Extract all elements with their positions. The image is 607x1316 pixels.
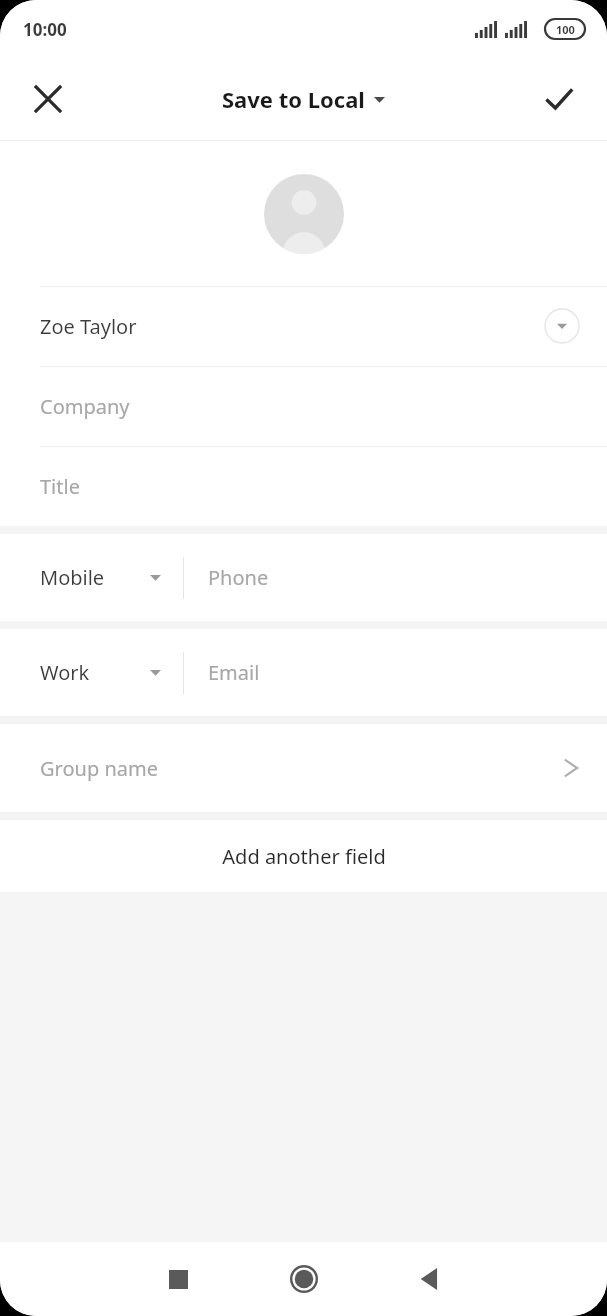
button[interactable]: Contact photo bbox=[264, 174, 344, 254]
staticText: Title bbox=[40, 473, 80, 500]
button[interactable]: Back bbox=[392, 1242, 468, 1316]
button[interactable]: Company bbox=[0, 366, 607, 446]
button[interactable]: Group name bbox=[0, 724, 607, 812]
staticText: Email bbox=[208, 659, 260, 686]
staticText: Save to Local bbox=[222, 84, 365, 114]
staticText: Group name bbox=[40, 755, 158, 782]
staticText: Zoe Taylor bbox=[40, 313, 137, 340]
staticText: Phone bbox=[208, 564, 269, 591]
staticText: Company bbox=[40, 393, 130, 420]
button[interactable]: Expand name bbox=[544, 308, 580, 344]
button[interactable]: Save bbox=[521, 61, 597, 137]
staticText: 100 bbox=[556, 22, 575, 37]
button[interactable]: Home bbox=[266, 1242, 342, 1316]
button[interactable]: Mobile bbox=[0, 534, 607, 621]
button[interactable]: Title bbox=[0, 446, 607, 526]
button[interactable]: Add another field bbox=[0, 820, 607, 892]
button[interactable]: Recent apps bbox=[140, 1242, 216, 1316]
button[interactable]: Work bbox=[0, 629, 607, 716]
button[interactable]: Close bbox=[10, 61, 86, 137]
button[interactable]: Save to Local bbox=[222, 84, 385, 114]
staticText: 10:00 bbox=[23, 18, 67, 41]
staticText: Work bbox=[40, 659, 90, 686]
button[interactable]: Zoe Taylor bbox=[0, 286, 607, 366]
staticText: Add another field bbox=[222, 843, 386, 870]
staticText: Mobile bbox=[40, 564, 105, 591]
